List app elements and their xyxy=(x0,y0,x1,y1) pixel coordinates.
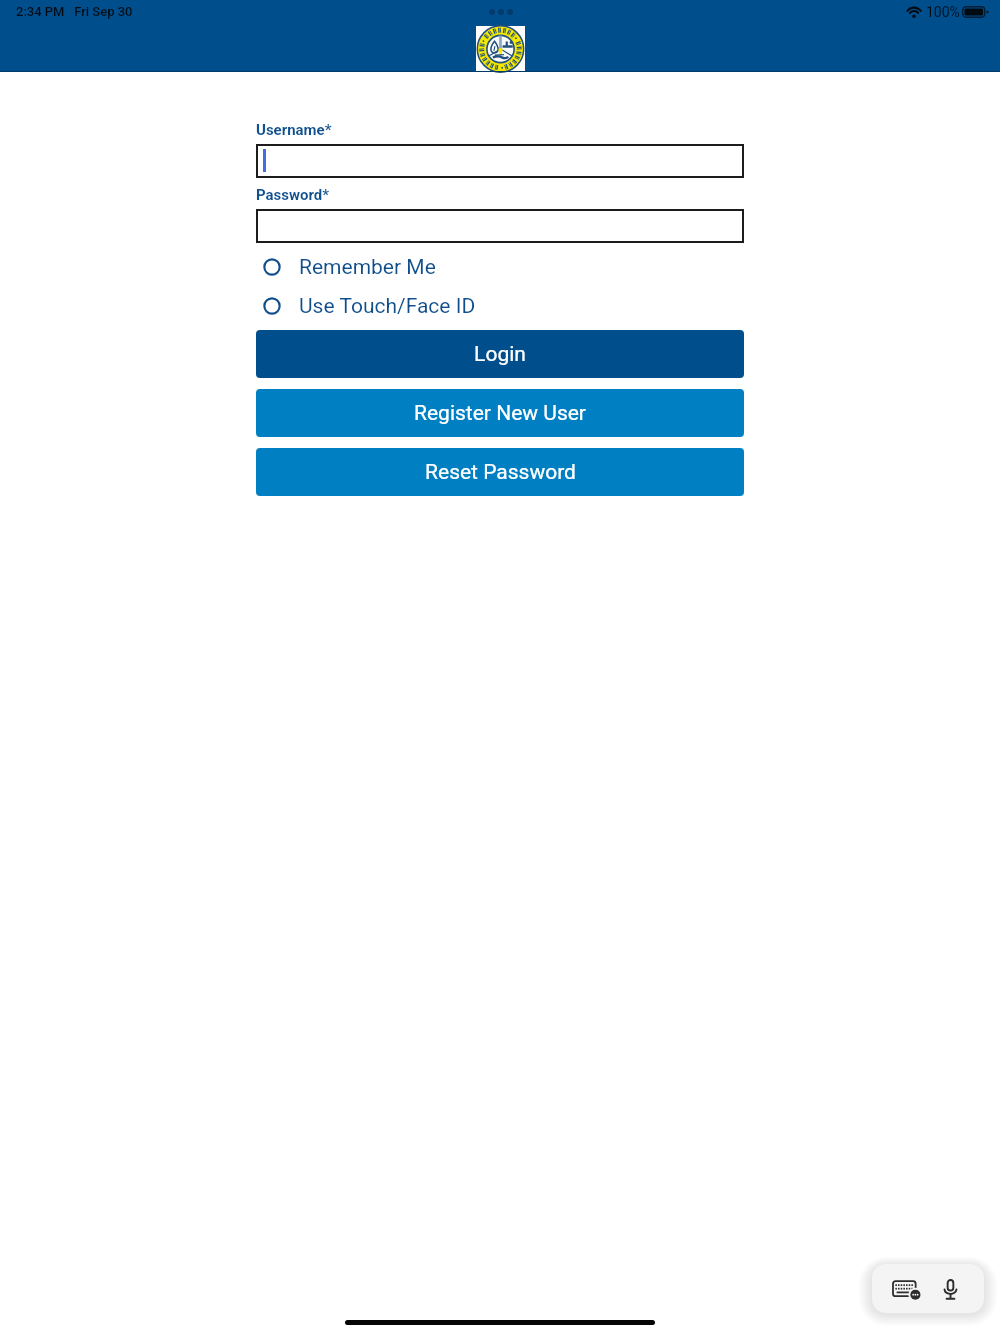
staticText: Remember Me xyxy=(299,255,436,280)
staticText: Login xyxy=(474,342,526,367)
staticText: Password* xyxy=(256,186,330,204)
button[interactable]: Keyboard options xyxy=(891,1273,923,1305)
button[interactable]: Use Touch/Face ID xyxy=(261,291,511,321)
staticText: 2:34 PM Fri Sep 30 xyxy=(16,4,133,19)
button[interactable]: Dictation xyxy=(934,1273,966,1305)
button[interactable]: Password field xyxy=(256,209,744,243)
button[interactable]: Register New User xyxy=(256,389,744,437)
button[interactable]: Login xyxy=(256,330,744,378)
staticText: Register New User xyxy=(414,401,586,426)
button[interactable]: Username field xyxy=(256,144,744,178)
button[interactable]: Reset Password xyxy=(256,448,744,496)
staticText: 100% xyxy=(926,4,960,20)
staticText: Reset Password xyxy=(425,460,576,485)
staticText: Username* xyxy=(256,121,332,139)
button[interactable]: Remember Me xyxy=(261,252,511,282)
staticText: Use Touch/Face ID xyxy=(299,294,476,319)
